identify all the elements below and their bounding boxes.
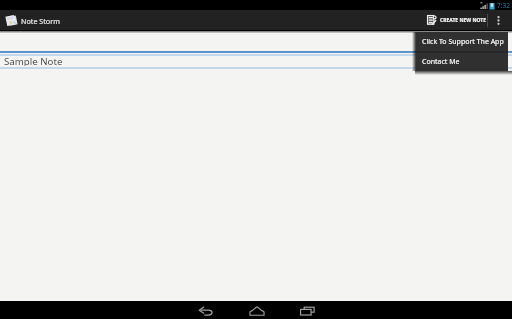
button[interactable]: Sample Note xyxy=(0,56,512,67)
staticText: CREATE NEW NOTE xyxy=(440,17,486,24)
button[interactable]: Back xyxy=(180,302,231,319)
staticText: Sample Note xyxy=(4,55,63,66)
button[interactable]: CREATE NEW NOTE xyxy=(419,10,487,30)
staticText: Note Storm xyxy=(21,16,60,26)
staticText: Click To Support The App xyxy=(422,37,504,47)
staticText: Contact Me xyxy=(422,57,460,67)
button[interactable]: More options xyxy=(488,10,512,30)
button[interactable]: Click To Support The App xyxy=(416,32,508,51)
staticText: 7:32 xyxy=(497,1,511,10)
button[interactable]: Contact Me xyxy=(416,53,508,71)
button[interactable]: Recent apps xyxy=(282,302,333,319)
button[interactable]: Home xyxy=(231,302,282,319)
